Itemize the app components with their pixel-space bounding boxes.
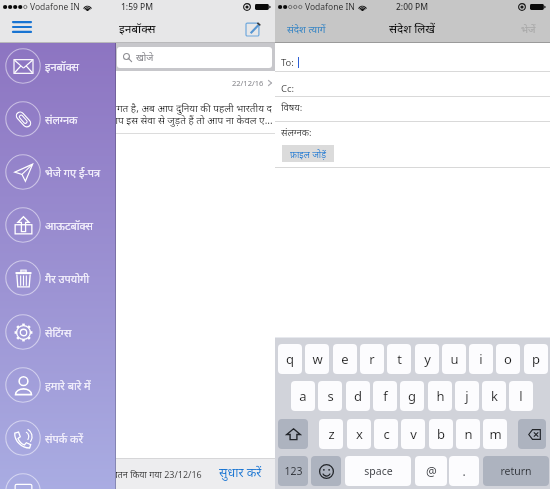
staticText: भेजें	[521, 22, 536, 36]
staticText: इनबॉक्स	[119, 21, 156, 37]
staticText: z	[328, 425, 335, 443]
button[interactable]: संपर्क करें	[0, 412, 116, 464]
staticText: हमारे बारे में	[45, 378, 91, 393]
staticText: भेजे गए ई-पत्र	[45, 165, 101, 180]
button[interactable]: y	[415, 344, 439, 374]
staticText: v	[410, 425, 417, 443]
staticText: s	[327, 387, 334, 405]
button[interactable]: Emoji	[311, 456, 341, 486]
button[interactable]: Cc:	[275, 72, 550, 97]
button[interactable]: फ़ाइल जोड़ें	[282, 145, 334, 162]
button[interactable]: i	[469, 344, 493, 374]
button[interactable]: विषय:	[275, 97, 550, 122]
staticText: x	[356, 425, 363, 443]
button[interactable]: a	[291, 381, 315, 411]
staticText: संपर्क करें	[45, 431, 83, 446]
button[interactable]: z	[319, 419, 343, 449]
staticText: l	[519, 387, 523, 405]
staticText: i	[479, 350, 483, 368]
button[interactable]: खोजे	[117, 47, 272, 68]
staticText: o	[504, 350, 512, 368]
staticText: अंतिम अद्यतन किया गया 23/12/16	[83, 468, 202, 480]
button[interactable]: Menu	[7, 15, 37, 41]
staticText: सेटिंग्स	[45, 325, 72, 340]
staticText: .	[462, 463, 466, 479]
staticText: खोजे	[136, 51, 154, 64]
button[interactable]	[0, 465, 116, 489]
staticText: r	[369, 350, 375, 368]
button[interactable]: e	[333, 344, 357, 374]
staticText: To:	[281, 56, 294, 69]
button[interactable]: Backspace	[518, 419, 546, 449]
staticText: इनबॉक्स	[45, 59, 80, 74]
button[interactable]: g	[400, 381, 424, 411]
staticText: a	[299, 387, 307, 405]
button[interactable]: x	[347, 419, 371, 449]
button[interactable]: 123	[278, 456, 308, 486]
button[interactable]: सेटिंग्स	[0, 306, 116, 358]
button[interactable]: .	[449, 456, 479, 486]
staticText: d	[354, 387, 362, 405]
staticText: k	[491, 387, 498, 405]
staticText: y	[424, 350, 431, 368]
button[interactable]: o	[496, 344, 520, 374]
button[interactable]: 22/12/16	[0, 71, 275, 134]
staticText: फ़ाइल जोड़ें	[290, 148, 326, 160]
button[interactable]: f	[373, 381, 397, 411]
button[interactable]: m	[483, 419, 507, 449]
staticText: विषय:	[281, 101, 303, 114]
staticText: Cc:	[281, 82, 295, 95]
button[interactable]: इनबॉक्स	[0, 40, 116, 92]
button[interactable]: s	[318, 381, 342, 411]
staticText: q	[286, 350, 294, 368]
button[interactable]: n	[456, 419, 480, 449]
button[interactable]: d	[346, 381, 370, 411]
button[interactable]: return	[483, 456, 549, 486]
staticText: 22/12/16	[232, 78, 264, 88]
button[interactable]: h	[428, 381, 452, 411]
button[interactable]: space	[345, 456, 411, 486]
button[interactable]: u	[442, 344, 466, 374]
button[interactable]: p	[524, 344, 548, 374]
button[interactable]: Shift	[278, 419, 308, 449]
button[interactable]: @	[415, 456, 447, 486]
button[interactable]: k	[482, 381, 506, 411]
button[interactable]: w	[305, 344, 329, 374]
button[interactable]: गैर उपयोगी	[0, 252, 116, 304]
staticText: g	[408, 387, 416, 405]
staticText: b	[437, 425, 445, 443]
button[interactable]: c	[374, 419, 398, 449]
button[interactable]: हमारे बारे में	[0, 359, 116, 411]
button[interactable]: q	[278, 344, 302, 374]
button[interactable]: b	[429, 419, 453, 449]
button[interactable]: संदेश त्यागें	[287, 22, 326, 36]
staticText: त में स्वागत है, अब आप दुनिया की पहली भा…	[88, 101, 272, 115]
staticText: आऊटबॉक्स	[45, 218, 93, 233]
staticText: गैर उपयोगी	[45, 271, 90, 286]
staticText: जब आप इस सेवा से जुड़ते हैं तो आप ना केव…	[92, 113, 273, 127]
staticText: @	[426, 463, 437, 479]
staticText: p	[532, 350, 540, 368]
staticText: n	[464, 425, 473, 443]
staticText: 123	[284, 464, 303, 478]
staticText: t	[397, 350, 402, 368]
staticText: संदेश त्यागें	[287, 22, 326, 36]
button[interactable]: भेजे गए ई-पत्र	[0, 146, 116, 198]
button[interactable]: भेजें	[521, 22, 536, 36]
button[interactable]: l	[509, 381, 533, 411]
staticText: h	[436, 387, 445, 405]
staticText: u	[450, 350, 459, 368]
button[interactable]: t	[387, 344, 411, 374]
staticText: space	[364, 464, 393, 478]
button[interactable]: आऊटबॉक्स	[0, 199, 116, 251]
button[interactable]: सुधार करें	[219, 464, 262, 481]
button[interactable]: Compose	[241, 16, 265, 40]
staticText: w	[312, 350, 323, 368]
button[interactable]: To:	[275, 43, 550, 72]
staticText: 2:00 PM	[396, 1, 429, 13]
button[interactable]: j	[455, 381, 479, 411]
button[interactable]: v	[401, 419, 425, 449]
button[interactable]: संलग्नक	[0, 93, 116, 145]
button[interactable]: r	[360, 344, 384, 374]
staticText: 1:59 PM	[121, 1, 154, 13]
